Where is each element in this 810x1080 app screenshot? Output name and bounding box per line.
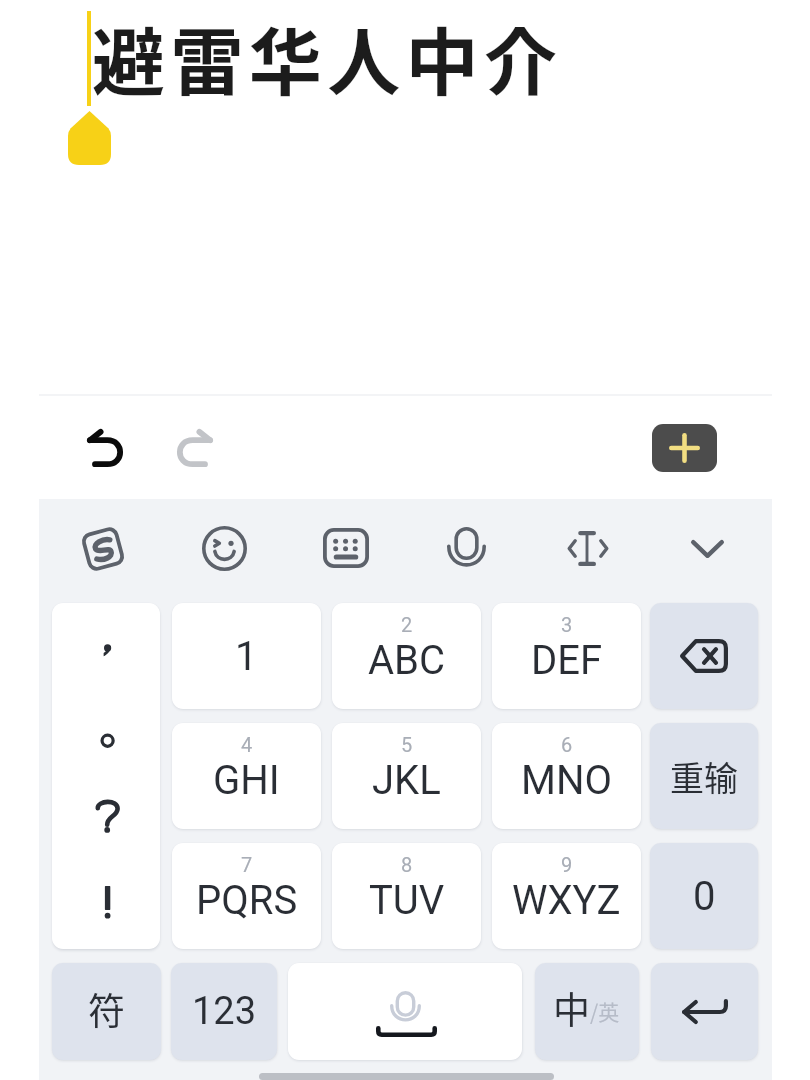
staticText: 6 [561, 733, 573, 756]
staticText: 5 [401, 733, 413, 756]
staticText: 9 [561, 853, 573, 876]
staticText: 符 [88, 982, 125, 1036]
staticText: 0 [693, 873, 716, 920]
staticText: 中 [553, 981, 590, 1035]
button[interactable]: 123 [171, 963, 277, 1060]
button[interactable]: Emoji [186, 515, 262, 581]
button[interactable]: 1 [172, 603, 321, 709]
button[interactable]: Enter [651, 963, 758, 1060]
staticText: TUV [369, 877, 445, 924]
button[interactable]: 重输 [650, 723, 758, 829]
staticText: 123 [192, 989, 257, 1034]
button[interactable]: 7 [172, 843, 321, 949]
staticText: 4 [241, 733, 253, 756]
staticText: ABC [368, 637, 446, 684]
staticText: 1 [235, 633, 258, 680]
button[interactable]: 2 [332, 603, 481, 709]
button[interactable]: 9 [492, 843, 641, 949]
staticText: WXYZ [512, 877, 621, 924]
staticText: 避雷华人中介 [92, 4, 563, 110]
button[interactable]: 0 [650, 843, 758, 949]
button[interactable]: 符 [52, 963, 161, 1060]
staticText: 重输 [670, 752, 738, 801]
button[interactable]: Space [288, 963, 522, 1060]
button[interactable]: 中 [535, 963, 639, 1060]
button[interactable]: Voice input [428, 515, 504, 581]
staticText: JKL [372, 757, 441, 804]
staticText: PQRS [196, 877, 298, 924]
staticText: 2 [401, 613, 413, 636]
staticText: 8 [401, 853, 413, 876]
button[interactable]: Redo [166, 418, 226, 478]
button[interactable]: 5 [332, 723, 481, 829]
staticText: /英 [590, 996, 620, 1026]
staticText: 7 [241, 853, 253, 876]
staticText: GHI [213, 757, 280, 804]
button[interactable]: Move cursor [550, 515, 626, 581]
button[interactable]: 3 [492, 603, 641, 709]
button[interactable]: Add [652, 424, 717, 472]
button[interactable]: Backspace [650, 603, 758, 709]
button[interactable]: 8 [332, 843, 481, 949]
button[interactable]: Sogou input [65, 516, 141, 582]
button[interactable]: Hide keyboard [669, 516, 745, 582]
button[interactable]: Keyboard layout [308, 515, 384, 581]
staticText: 3 [561, 613, 573, 636]
button[interactable]: Punctuation [52, 603, 160, 949]
staticText: DEF [531, 637, 603, 684]
button[interactable]: Undo [74, 418, 134, 478]
staticText: MNO [521, 757, 612, 804]
button[interactable]: 4 [172, 723, 321, 829]
button[interactable]: 6 [492, 723, 641, 829]
